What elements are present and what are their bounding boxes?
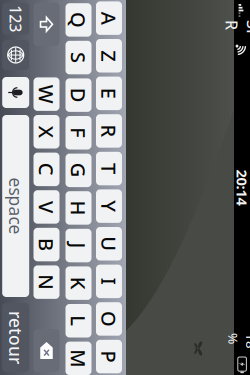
staticText: G: [100, 221, 115, 247]
button[interactable]: G: [91, 221, 125, 247]
staticText: T: [101, 190, 112, 217]
staticText: D: [25, 221, 40, 247]
staticText: C: [100, 253, 113, 279]
staticText: X: [63, 253, 75, 279]
button[interactable]: N: [203, 253, 236, 279]
button[interactable]: F: [53, 221, 87, 247]
button[interactable]: K: [204, 221, 237, 247]
button[interactable]: C: [90, 253, 124, 279]
button[interactable]: Dictation: [14, 283, 45, 310]
staticText: F: [65, 221, 76, 247]
button[interactable]: B: [165, 253, 199, 279]
staticText: R: [62, 190, 75, 217]
button[interactable]: I: [202, 190, 236, 216]
button[interactable]: D: [16, 221, 49, 247]
button[interactable]: T: [89, 190, 123, 216]
button[interactable]: O: [240, 190, 250, 216]
staticText: J: [180, 221, 186, 247]
staticText: 20:14: [107, 60, 143, 80]
button[interactable]: Next keyboard: [0, 283, 7, 310]
staticText: espace: [115, 285, 172, 308]
button[interactable]: S: [0, 221, 12, 247]
staticText: E: [25, 190, 36, 217]
button[interactable]: W: [15, 253, 48, 279]
button[interactable]: Z: [0, 190, 10, 216]
button[interactable]: E: [14, 190, 48, 216]
button[interactable]: X: [52, 253, 86, 279]
button[interactable]: J: [166, 221, 200, 247]
staticText: W: [22, 253, 41, 279]
button[interactable]: espace: [52, 283, 234, 310]
button[interactable]: R: [52, 190, 85, 216]
